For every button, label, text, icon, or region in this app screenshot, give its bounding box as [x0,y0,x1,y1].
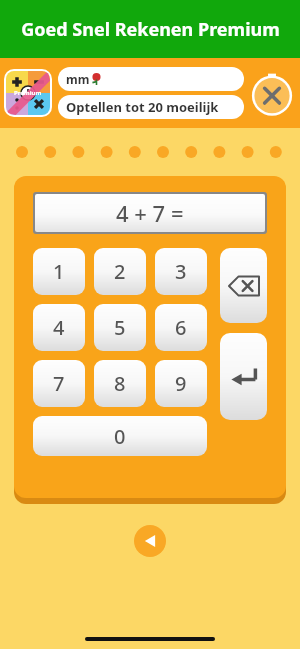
staticText: 9 [175,370,187,397]
staticText: 1 [53,258,65,285]
button[interactable]: 6 [155,304,207,351]
staticText: Goed Snel Rekenen Premium [21,17,280,42]
button[interactable]: 8 [94,360,146,407]
button[interactable]: Backspace [220,248,267,323]
button[interactable]: 7 [33,360,85,407]
staticText: 5 [114,314,126,341]
staticText: 7 [53,370,65,397]
button[interactable]: 3 [155,248,207,295]
staticText: 4 + 7 = [116,198,184,228]
button[interactable]: mm [58,67,244,91]
staticText: 0 [114,423,126,450]
staticText: Premium [14,89,42,97]
button[interactable]: 1 [33,248,85,295]
staticText: 8 [114,370,126,397]
button[interactable]: Optellen tot 20 moeilijk [58,95,244,119]
button[interactable]: Enter [220,333,267,420]
staticText: 4 [53,314,65,341]
button[interactable]: Close [250,71,294,115]
button[interactable]: 5 [94,304,146,351]
staticText: 3 [175,258,187,285]
button[interactable]: Back [134,525,166,557]
button[interactable]: 9 [155,360,207,407]
button[interactable]: 0 [33,416,207,456]
staticText: mm [66,71,90,87]
staticText: 6 [175,314,187,341]
button[interactable]: 2 [94,248,146,295]
staticText: Optellen tot 20 moeilijk [66,98,219,116]
button[interactable]: 4 [33,304,85,351]
button[interactable]: Premium [4,69,52,117]
staticText: 2 [114,258,126,285]
